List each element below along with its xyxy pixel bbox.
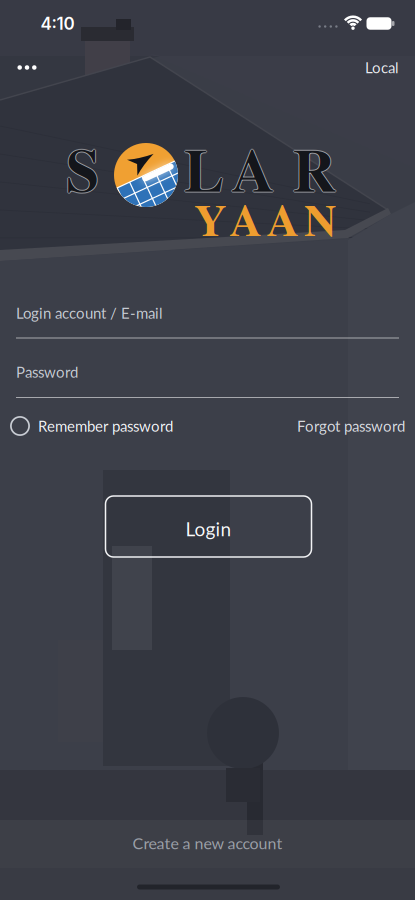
staticText: YAAN	[194, 186, 336, 251]
staticText: A	[230, 125, 273, 212]
button[interactable]: Login account / E-mail	[16, 304, 399, 341]
staticText: R	[292, 124, 335, 211]
staticText: Login account / E-mail	[16, 304, 163, 322]
staticText: S	[66, 124, 99, 211]
staticText: Local	[365, 58, 399, 76]
button[interactable]: Local	[365, 58, 399, 76]
staticText: R	[291, 125, 334, 212]
staticText: L	[184, 126, 224, 213]
button[interactable]: Login	[105, 496, 311, 557]
staticText: Password	[16, 363, 78, 381]
staticText: Login	[185, 518, 231, 540]
staticText: S	[67, 125, 100, 212]
staticText: R	[293, 125, 336, 212]
staticText: R	[292, 126, 335, 213]
button[interactable]: Create a new account	[0, 819, 415, 867]
button[interactable]: Remember password	[10, 416, 173, 436]
staticText: Remember password	[38, 417, 173, 435]
button[interactable]: Forgot password	[297, 417, 405, 435]
staticText: S	[66, 126, 99, 213]
staticText: S	[66, 125, 99, 212]
staticText: 4:10	[40, 13, 74, 34]
staticText: Forgot password	[297, 417, 405, 435]
staticText: L	[184, 124, 224, 211]
staticText: A	[231, 124, 274, 211]
staticText: L	[183, 125, 223, 212]
staticText: A	[231, 125, 274, 212]
button[interactable]: Menu	[13, 55, 41, 79]
staticText: A	[231, 126, 274, 213]
staticText: L	[184, 125, 224, 212]
button[interactable]: Password	[16, 363, 399, 401]
staticText: R	[292, 125, 335, 212]
staticText: Create a new account	[132, 833, 282, 853]
staticText: A	[232, 125, 275, 212]
staticText: S	[65, 125, 98, 212]
staticText: L	[185, 125, 225, 212]
